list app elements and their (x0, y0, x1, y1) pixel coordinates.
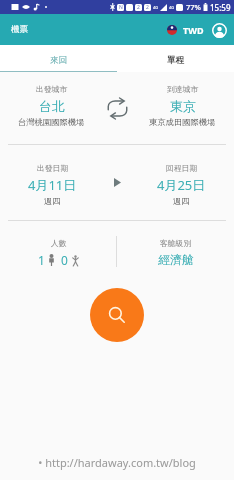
staticText: 人數 (51, 238, 67, 248)
staticText: 回程日期 (166, 163, 198, 173)
staticText: 來回 (50, 55, 67, 66)
staticText: 2 (137, 4, 140, 11)
staticText: 4月25日 (157, 176, 206, 194)
staticText: N (119, 4, 123, 11)
staticText: 2 (146, 4, 149, 11)
button[interactable]: 回程日期 (129, 145, 234, 220)
button[interactable]: TWD (165, 20, 206, 40)
button[interactable]: 出發日期 (0, 145, 105, 220)
staticText: 機票 (11, 24, 28, 35)
staticText: 4月11日 (28, 176, 77, 194)
staticText: 0 (61, 252, 68, 268)
button[interactable]: 出發城市 (0, 72, 103, 144)
staticText: 客艙級別 (160, 238, 192, 248)
staticText: 單程 (167, 55, 184, 66)
button[interactable]: 來回 (0, 45, 117, 71)
staticText: 經濟艙 (158, 252, 194, 267)
staticText: TWD (183, 24, 204, 36)
staticText: 出發城市 (36, 84, 68, 94)
staticText: 台北 (39, 98, 65, 114)
staticText: 東京成田國際機場 (149, 117, 216, 127)
button[interactable]: Swap cities (103, 94, 131, 122)
staticText: 77% (186, 2, 201, 12)
staticText: 台灣桃園國際機場 (18, 117, 85, 127)
button[interactable]: Search (90, 288, 144, 342)
button[interactable]: 機票 (0, 18, 39, 41)
staticText: 週四 (173, 196, 190, 206)
button[interactable]: 單程 (117, 45, 234, 71)
button[interactable]: 人數 (26, 232, 91, 271)
staticText: 週四 (44, 196, 61, 206)
staticText: 15:59 (210, 2, 231, 13)
button[interactable]: Account (211, 22, 227, 38)
staticText: • http://hardaway.com.tw/blog (38, 455, 196, 470)
button[interactable]: 客艙級別 (146, 232, 206, 270)
staticText: 4G (169, 5, 175, 10)
staticText: 1 (38, 252, 45, 268)
button[interactable]: 到達城市 (131, 72, 234, 144)
staticText: 到達城市 (167, 84, 199, 94)
staticText: 出發日期 (37, 163, 69, 173)
staticText: 4G (153, 5, 159, 10)
staticText: 東京 (170, 98, 196, 114)
